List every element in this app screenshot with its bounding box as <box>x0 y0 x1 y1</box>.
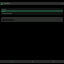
button[interactable]: Menu <box>1 3 3 5</box>
button[interactable] <box>1 8 63 15</box>
button[interactable]: Tab 2 <box>22 60 43 63</box>
button[interactable] <box>1 17 63 22</box>
button[interactable]: Tab 1 <box>0 60 22 63</box>
button[interactable]: Tab 3 <box>43 60 64 63</box>
